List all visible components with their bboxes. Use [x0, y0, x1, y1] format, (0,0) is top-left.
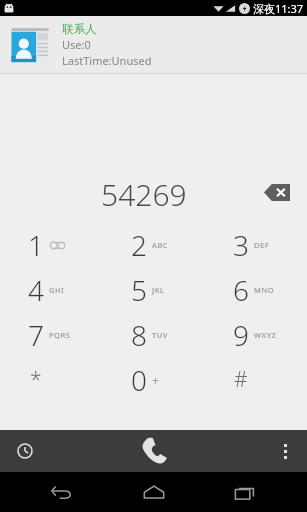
button[interactable]: Recent apps: [216, 472, 274, 512]
staticText: 深夜11:37: [253, 1, 304, 16]
staticText: WXYZ: [254, 330, 277, 340]
button[interactable]: 6: [205, 267, 307, 312]
staticText: LastTime:Unused: [62, 53, 152, 68]
button[interactable]: 2: [103, 222, 205, 267]
staticText: 3: [233, 226, 249, 264]
staticText: 6: [233, 271, 249, 309]
button[interactable]: 9: [205, 312, 307, 357]
staticText: 0: [131, 361, 147, 399]
staticText: 4: [28, 271, 44, 309]
button[interactable]: 8: [103, 312, 205, 357]
staticText: 5: [131, 271, 147, 309]
button[interactable]: 7: [0, 312, 103, 357]
button[interactable]: 0: [103, 357, 205, 402]
button[interactable]: 3: [205, 222, 307, 267]
staticText: DEF: [254, 240, 270, 250]
button[interactable]: More options: [271, 431, 299, 471]
staticText: PQRS: [49, 330, 71, 340]
staticText: +: [152, 372, 159, 388]
staticText: 9: [233, 316, 249, 354]
button[interactable]: Back: [33, 472, 91, 512]
button[interactable]: Home: [125, 472, 183, 512]
staticText: JKL: [152, 285, 165, 295]
button[interactable]: 4: [0, 267, 103, 312]
staticText: 1: [28, 226, 44, 264]
button[interactable]: 联系人: [0, 16, 307, 73]
staticText: *: [30, 365, 42, 394]
staticText: 联系人: [62, 22, 97, 36]
button[interactable]: *: [0, 357, 103, 402]
staticText: 8: [131, 316, 147, 354]
staticText: TUV: [152, 330, 168, 340]
staticText: Use:0: [62, 37, 91, 52]
button[interactable]: 5: [103, 267, 205, 312]
button[interactable]: 1: [0, 222, 103, 267]
staticText: MNO: [254, 285, 275, 295]
staticText: ABC: [152, 240, 169, 250]
button[interactable]: Call history: [10, 436, 40, 466]
button[interactable]: #: [205, 357, 307, 402]
staticText: 7: [28, 316, 44, 354]
button[interactable]: Backspace: [255, 175, 299, 209]
button[interactable]: Call: [123, 430, 185, 472]
staticText: #: [234, 365, 248, 394]
staticText: 2: [131, 226, 147, 264]
staticText: GHI: [49, 285, 65, 295]
staticText: 54269: [101, 174, 187, 210]
